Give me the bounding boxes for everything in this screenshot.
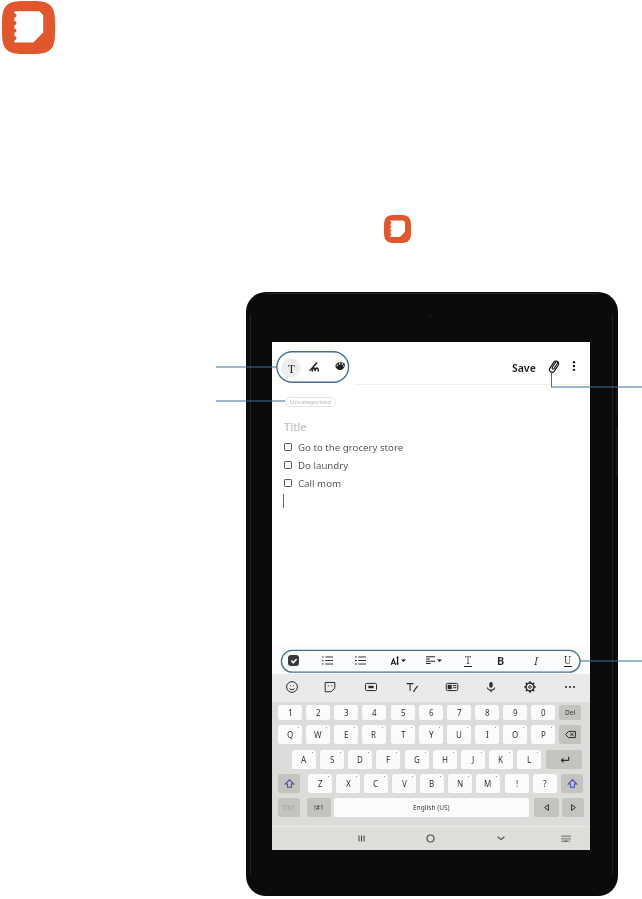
button[interactable]: Save	[509, 361, 539, 375]
button[interactable]: Bulleted list	[318, 651, 336, 669]
button[interactable]: Clipboard	[441, 674, 463, 700]
button[interactable]: Home	[419, 827, 441, 849]
button[interactable]: 9	[503, 705, 527, 720]
button[interactable]	[546, 750, 582, 769]
button[interactable]: Checklist	[284, 651, 302, 669]
button[interactable]: L	[517, 750, 541, 769]
button[interactable]	[559, 725, 581, 744]
button[interactable]: Italic	[527, 651, 545, 669]
staticText: K	[498, 754, 504, 765]
button[interactable]: D	[348, 750, 372, 769]
staticText: 5	[401, 707, 406, 718]
button[interactable]: 6	[419, 705, 443, 720]
button[interactable]: !#1	[307, 798, 331, 817]
staticText: Del	[565, 708, 576, 717]
button[interactable]	[562, 798, 584, 817]
staticText: Y	[429, 729, 434, 740]
staticText: U	[564, 653, 572, 667]
button[interactable]: K	[489, 750, 513, 769]
staticText: T	[465, 653, 472, 667]
button[interactable]: Attach	[544, 358, 562, 376]
button[interactable]: Uncategorized	[285, 397, 336, 407]
button[interactable]: Alignment	[423, 651, 445, 669]
button[interactable]: 2	[306, 705, 330, 720]
button[interactable]: Emoji	[281, 674, 303, 700]
button[interactable]: Keyboard	[554, 827, 576, 849]
button[interactable]: Underline	[559, 651, 577, 669]
button[interactable]: GIF	[360, 674, 382, 700]
button[interactable]	[534, 798, 559, 817]
staticText: C	[373, 778, 379, 789]
button[interactable]: English (US)	[334, 798, 529, 817]
staticText: Q	[287, 729, 294, 740]
button[interactable]: 0	[531, 705, 555, 720]
button[interactable]: Text style	[387, 651, 409, 669]
button[interactable]: Text mode	[281, 358, 301, 378]
button[interactable]: X	[336, 774, 360, 793]
staticText: 7	[457, 707, 462, 718]
button[interactable]: Hide keyboard	[490, 827, 512, 849]
staticText: V	[402, 778, 407, 789]
staticText: !#1	[314, 803, 324, 812]
button[interactable]: T	[391, 725, 415, 744]
button[interactable]: S	[320, 750, 344, 769]
button[interactable]: 8	[475, 705, 499, 720]
button[interactable]: U	[447, 725, 471, 744]
button[interactable]: Handwriting	[401, 674, 423, 700]
staticText: Go to the grocery store	[298, 441, 404, 454]
button[interactable]: W	[306, 725, 330, 744]
button[interactable]: Ctrl	[278, 798, 300, 817]
button[interactable]: ?	[533, 774, 557, 793]
button[interactable]: Keyboard settings	[519, 674, 541, 700]
button[interactable]: O	[503, 725, 527, 744]
button[interactable]: Del	[559, 705, 581, 720]
button[interactable]: 7	[447, 705, 471, 720]
staticText: I	[486, 729, 489, 740]
button[interactable]: Y	[419, 725, 443, 744]
button[interactable]	[561, 774, 583, 793]
staticText: U	[456, 729, 462, 740]
staticText: 6	[429, 707, 434, 718]
staticText: T	[401, 729, 406, 740]
button[interactable]: I	[475, 725, 499, 744]
button[interactable]: !	[505, 774, 529, 793]
button[interactable]: Recents	[350, 827, 372, 849]
button[interactable]: Drawing palette	[332, 358, 348, 374]
button[interactable]: C	[364, 774, 388, 793]
button[interactable]: G	[405, 750, 429, 769]
button[interactable]: Do laundry	[284, 458, 349, 472]
button[interactable]: Sticker	[319, 674, 341, 700]
button[interactable]: Call mom	[284, 476, 342, 490]
button[interactable]: P	[531, 725, 555, 744]
button[interactable]: Go to the grocery store	[284, 440, 404, 454]
staticText: Do laundry	[298, 459, 349, 472]
button[interactable]: A	[292, 750, 316, 769]
button[interactable]: J	[461, 750, 485, 769]
button[interactable]: H	[433, 750, 457, 769]
button[interactable]: M	[476, 774, 500, 793]
button[interactable]: Voice input	[480, 674, 502, 700]
button[interactable]: More options	[566, 358, 582, 374]
button[interactable]: Z	[308, 774, 332, 793]
button[interactable]: 1	[278, 705, 302, 720]
button[interactable]: B	[420, 774, 444, 793]
button[interactable]: F	[376, 750, 400, 769]
button[interactable]: Text color	[459, 651, 477, 669]
button[interactable]: E	[334, 725, 358, 744]
button[interactable]: N	[448, 774, 472, 793]
button[interactable]: Bold	[492, 651, 510, 669]
staticText: Call mom	[298, 477, 342, 490]
button[interactable]: 3	[334, 705, 358, 720]
button[interactable]: Q	[278, 725, 302, 744]
staticText: H	[442, 754, 448, 765]
button[interactable]: 4	[362, 705, 386, 720]
button[interactable]: More	[559, 674, 581, 700]
button[interactable]: Pen	[306, 358, 322, 374]
button[interactable]: R	[362, 725, 386, 744]
button[interactable]	[278, 774, 300, 793]
button[interactable]: 5	[391, 705, 415, 720]
staticText: W	[314, 729, 322, 740]
staticText: 1	[288, 707, 293, 718]
button[interactable]: V	[392, 774, 416, 793]
button[interactable]: Numbered list	[351, 651, 369, 669]
